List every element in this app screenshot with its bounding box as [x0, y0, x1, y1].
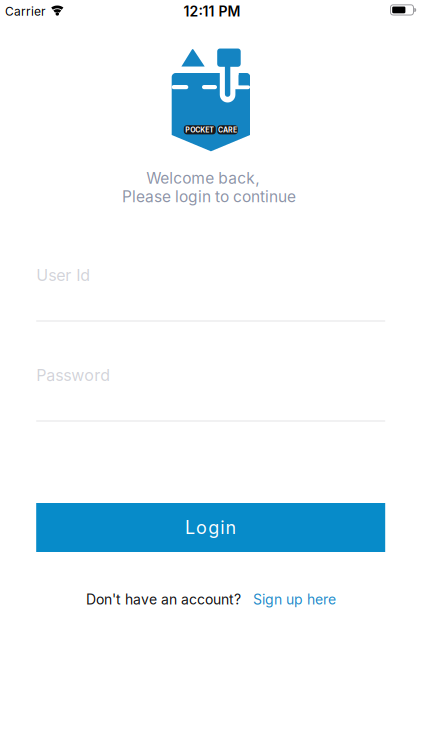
- staticText: Password: [36, 365, 110, 385]
- staticText: CARE: [218, 126, 237, 134]
- button[interactable]: Sign up here: [253, 591, 336, 608]
- staticText: Sign up here: [253, 591, 336, 608]
- staticText: Login: [185, 517, 236, 538]
- staticText: Carrier: [5, 4, 46, 19]
- button[interactable]: Login: [36, 503, 385, 552]
- staticText: User Id: [36, 265, 90, 285]
- button[interactable]: User Id: [36, 265, 385, 321]
- staticText: 12:11 PM: [183, 3, 240, 20]
- button[interactable]: Password: [36, 365, 385, 421]
- staticText: Don't have an account?: [86, 591, 241, 608]
- staticText: Welcome back,: [146, 169, 259, 187]
- staticText: POCKET: [185, 126, 214, 134]
- staticText: Please login to continue: [122, 187, 296, 206]
